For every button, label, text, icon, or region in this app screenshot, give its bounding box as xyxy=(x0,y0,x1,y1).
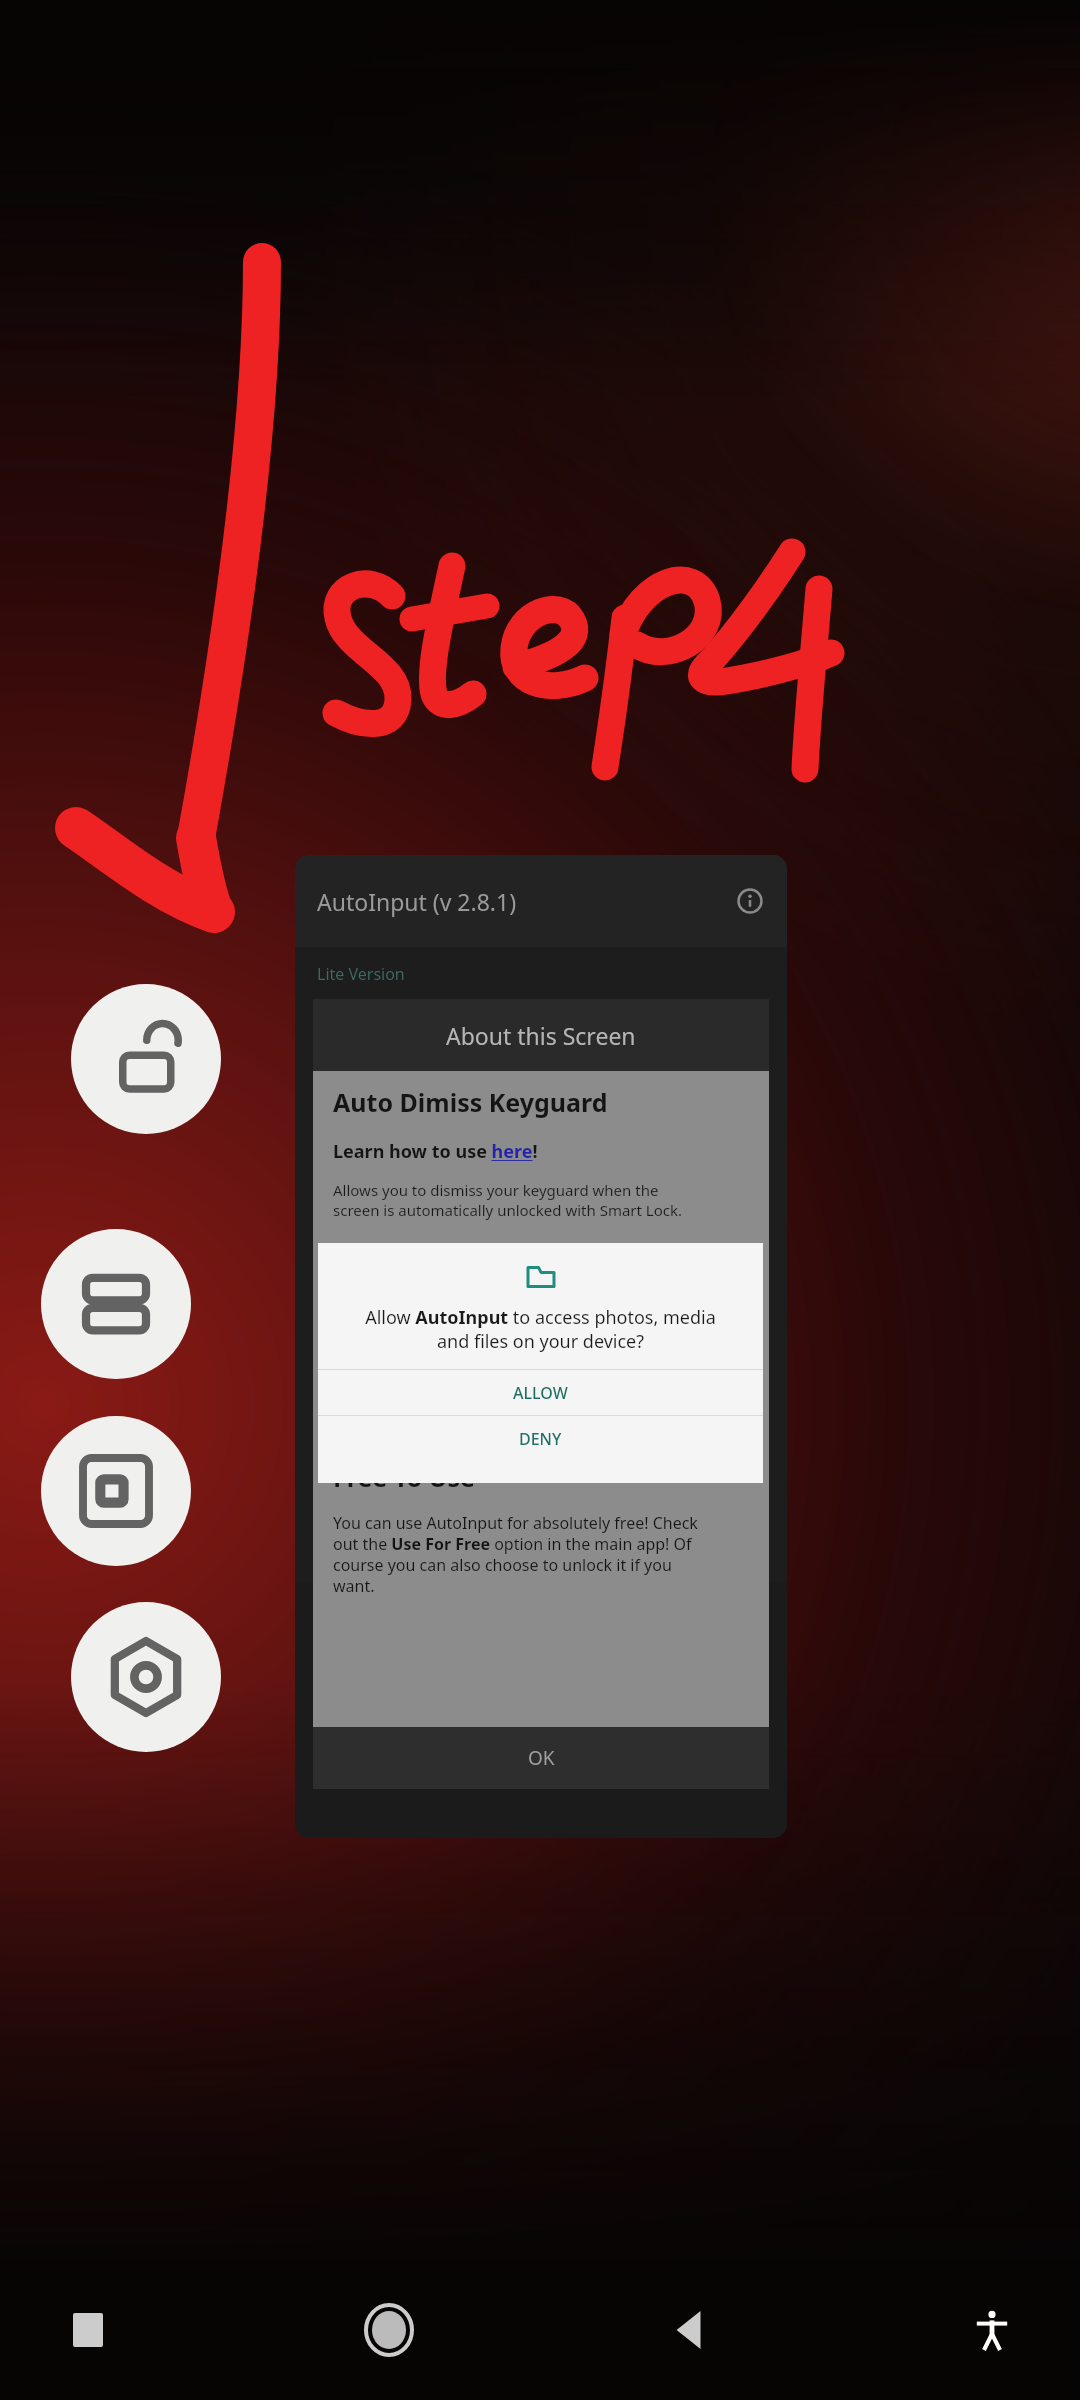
staticText: Lite Version xyxy=(317,963,405,985)
staticText: Free To Use xyxy=(333,1460,475,1494)
button[interactable]: Split screen xyxy=(41,1229,191,1379)
button[interactable]: Recents xyxy=(40,2282,136,2378)
staticText: Mai xyxy=(317,1481,345,1503)
staticText: TRIAL xyxy=(319,1153,338,1163)
staticText: DENY xyxy=(519,1428,562,1450)
staticText: Learn how to use here! xyxy=(333,1139,538,1164)
button[interactable]: Home xyxy=(341,2282,437,2378)
button[interactable]: Picture in picture xyxy=(41,1416,191,1566)
staticText: Allows you to dismiss your keyguard when… xyxy=(333,1180,683,1220)
button[interactable]: Settings xyxy=(71,1602,221,1752)
staticText: OK xyxy=(528,1745,555,1771)
staticText: You can use AutoInput for absolutely fre… xyxy=(333,1512,698,1597)
button[interactable]: DENY xyxy=(318,1416,763,1461)
staticText: Auto Dimiss Keyguard xyxy=(333,1085,608,1119)
button[interactable]: OK xyxy=(313,1727,769,1789)
staticText: Ac xyxy=(317,1273,335,1295)
button[interactable]: Accessibility xyxy=(944,2282,1040,2378)
staticText: Manage Input Actions xyxy=(359,1519,556,1545)
staticText: AutoInput (v 2.8.1) xyxy=(317,886,517,917)
button[interactable]: Back xyxy=(643,2282,739,2378)
staticText: Here you can store input actions so you … xyxy=(359,1545,720,1582)
staticText: ALLOW xyxy=(513,1382,568,1404)
button[interactable]: Unlock keyguard xyxy=(71,984,221,1134)
button[interactable]: ALLOW xyxy=(318,1370,763,1415)
staticText: Get Full Version xyxy=(359,1011,499,1037)
staticText: About this Screen xyxy=(446,1020,636,1051)
staticText: Allow AutoInput to access photos, media … xyxy=(330,1305,751,1353)
